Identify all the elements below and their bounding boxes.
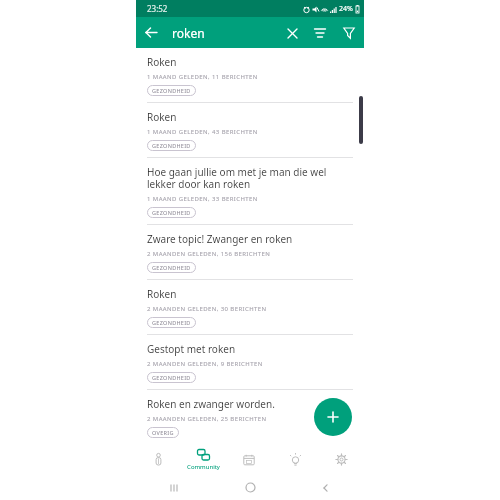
button[interactable]: Nieuw onderwerp [314,398,352,436]
button[interactable]: Community [181,444,226,475]
staticText: Roken [147,110,177,124]
staticText: Gestopt met roken [147,342,236,356]
button[interactable]: Sorteren [306,19,334,47]
staticText: GEZONDHEID [152,374,191,381]
staticText: Zware topic! Zwanger en roken [147,232,293,246]
staticText: Community [187,463,220,471]
button[interactable]: Wissen [278,19,306,47]
button[interactable]: Hoe gaan jullie om met je man die wel le… [136,158,364,225]
staticText: GEZONDHEID [152,209,191,216]
button[interactable]: roken [172,25,278,41]
button[interactable]: Roken [136,103,364,158]
button[interactable]: Terug [136,17,167,48]
staticText: OVERIG [152,429,174,436]
staticText: GEZONDHEID [152,319,191,326]
staticText: Hoe gaan jullie om met je man die wel le… [147,165,353,191]
button[interactable]: Recent apps [136,475,212,500]
staticText: GEZONDHEID [152,87,191,94]
staticText: 23:52 [147,3,168,14]
staticText: 2 MAANDEN GELEDEN, 25 BERICHTEN [147,415,267,423]
button[interactable]: Instellingen [318,444,364,475]
button[interactable]: Lichaam [136,444,181,475]
staticText: 24% [339,4,353,14]
button[interactable]: Home [212,475,288,500]
staticText: Roken [147,287,177,301]
staticText: 2 MAANDEN GELEDEN, 9 BERICHTEN [147,360,263,368]
staticText: 1 MAAND GELEDEN, 33 BERICHTEN [147,195,258,203]
button[interactable]: Roken en zwanger worden. [136,390,364,444]
staticText: GEZONDHEID [152,264,191,271]
button[interactable]: Gestopt met roken [136,335,364,390]
staticText: Roken en zwanger worden. [147,397,275,411]
staticText: 2 MAANDEN GELEDEN, 156 BERICHTEN [147,250,271,258]
button[interactable]: Back [288,475,364,500]
staticText: GEZONDHEID [152,142,191,149]
button[interactable]: Roken [136,280,364,335]
button[interactable]: Zware topic! Zwanger en roken [136,225,364,280]
staticText: Roken [147,55,177,69]
staticText: 1 MAAND GELEDEN, 11 BERICHTEN [147,73,258,81]
button[interactable]: Agenda [226,444,272,475]
staticText: 2 MAANDEN GELEDEN, 30 BERICHTEN [147,305,267,313]
button[interactable]: Roken [136,48,364,103]
button[interactable]: Tips [272,444,318,475]
staticText: 1 MAAND GELEDEN, 43 BERICHTEN [147,128,258,136]
button[interactable]: Filter [334,18,364,48]
